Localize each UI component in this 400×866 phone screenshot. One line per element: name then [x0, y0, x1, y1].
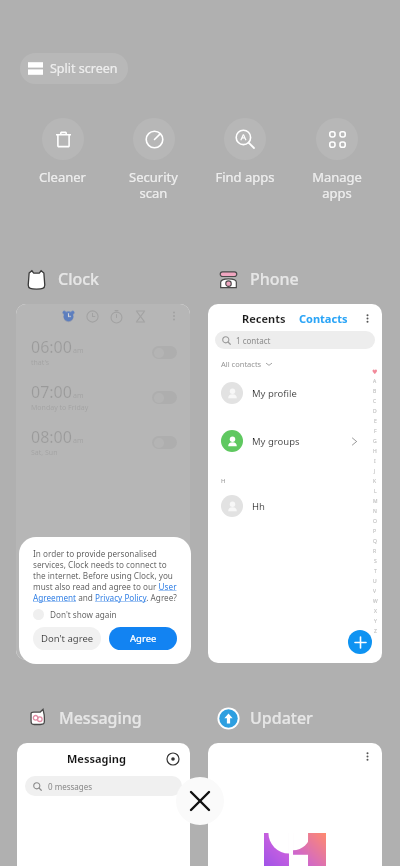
staticText: H: [221, 477, 226, 485]
button[interactable]: Settings: [166, 752, 180, 766]
button[interactable]: More options: [361, 750, 374, 763]
button[interactable]: My profile: [221, 381, 358, 405]
staticText: N: [373, 508, 377, 515]
staticText: F: [374, 428, 377, 435]
button[interactable]: 06:00: [31, 336, 177, 368]
button[interactable]: World clock: [86, 310, 99, 323]
button[interactable]: 07:00: [31, 381, 177, 413]
button[interactable]: Recents: [242, 311, 286, 326]
staticText: Y: [374, 618, 377, 625]
staticText: Split screen: [50, 60, 118, 77]
staticText: Q: [373, 538, 377, 545]
staticText: Phone: [250, 268, 299, 290]
staticText: I: [374, 458, 376, 465]
button[interactable]: Find apps: [199, 118, 291, 186]
button[interactable]: Alarm: [62, 310, 75, 323]
button[interactable]: More options: [361, 312, 374, 325]
staticText: X: [374, 608, 377, 615]
staticText: Security scan: [129, 168, 178, 201]
staticText: 1 contact: [236, 335, 271, 346]
button[interactable]: Close all: [176, 777, 224, 825]
staticText: U: [373, 578, 377, 585]
staticText: In order to provide personalised service…: [33, 548, 177, 603]
staticText: O: [373, 518, 377, 525]
staticText: K: [373, 478, 377, 485]
button[interactable]: More options: [167, 309, 181, 323]
staticText: C: [373, 398, 377, 405]
staticText: T: [374, 568, 377, 575]
staticText: R: [373, 548, 377, 555]
staticText: Cleaner: [39, 168, 86, 186]
staticText: H: [373, 448, 377, 455]
staticText: am: [73, 346, 84, 356]
button[interactable]: 08:00: [31, 426, 177, 458]
staticText: am: [73, 436, 84, 446]
staticText: Don't show again: [50, 609, 117, 620]
button[interactable]: Recents: [208, 304, 382, 663]
staticText: Monday to Friday: [31, 403, 89, 413]
button[interactable]: Cleaner: [17, 118, 108, 186]
staticText: Z: [374, 628, 377, 635]
staticText: A: [373, 378, 377, 385]
button[interactable]: Security scan: [108, 118, 199, 201]
staticText: E: [374, 418, 377, 425]
button[interactable]: 1 contact: [215, 331, 375, 349]
button[interactable]: Contacts: [299, 311, 348, 326]
button[interactable]: More options: [208, 743, 382, 866]
button[interactable]: Split screen: [20, 53, 128, 84]
button[interactable]: Stopwatch: [110, 310, 123, 323]
staticText: Messaging: [67, 751, 126, 766]
staticText: S: [374, 558, 377, 565]
button[interactable]: Alarm: [16, 304, 190, 660]
staticText: L: [374, 488, 377, 495]
button[interactable]: Don't show again: [33, 609, 117, 620]
staticText: M: [373, 498, 378, 505]
button[interactable]: Manage apps: [291, 118, 383, 201]
staticText: that's: [31, 358, 50, 368]
button[interactable]: Don't agree: [33, 627, 101, 650]
staticText: ♥: [372, 368, 378, 375]
button[interactable]: Add contact: [348, 630, 372, 654]
staticText: D: [373, 408, 377, 415]
staticText: Hh: [252, 500, 265, 513]
staticText: V: [373, 588, 377, 595]
staticText: 0 messages: [48, 781, 93, 792]
staticText: All contacts: [221, 359, 262, 369]
button[interactable]: Agree: [109, 627, 177, 650]
button[interactable]: Timer: [134, 310, 147, 323]
button[interactable]: Messaging: [17, 743, 190, 866]
staticText: G: [373, 438, 377, 445]
staticText: Agree: [130, 632, 157, 645]
staticText: Find apps: [215, 168, 275, 186]
staticText: Clock: [58, 268, 100, 290]
staticText: Sat, Sun: [31, 448, 58, 458]
button[interactable]: Hh: [221, 494, 358, 518]
staticText: P: [373, 528, 377, 535]
staticText: am: [73, 391, 84, 401]
staticText: B: [373, 388, 377, 395]
staticText: 06:00: [31, 336, 72, 358]
button[interactable]: 0 messages: [25, 776, 182, 796]
staticText: Manage apps: [312, 168, 362, 201]
staticText: My profile: [252, 387, 297, 400]
staticText: 08:00: [31, 426, 72, 448]
button[interactable]: All contacts: [221, 359, 272, 369]
staticText: Don't agree: [41, 632, 94, 645]
button[interactable]: My groups: [221, 429, 358, 453]
staticText: J: [374, 468, 376, 475]
staticText: 07:00: [31, 381, 72, 403]
staticText: Messaging: [59, 707, 142, 729]
staticText: My groups: [252, 435, 300, 448]
staticText: Updater: [250, 707, 313, 729]
staticText: W: [373, 598, 378, 605]
